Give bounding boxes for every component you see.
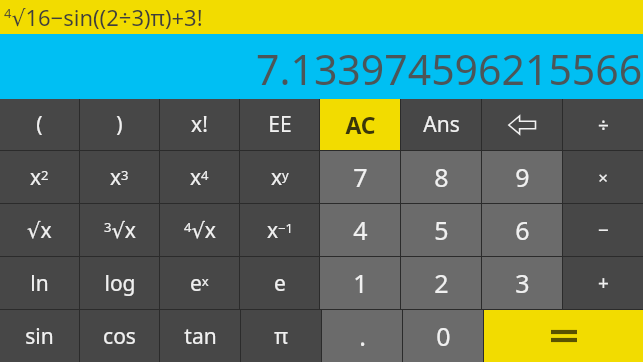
staticText: ex: [190, 269, 209, 298]
staticText: x2: [30, 163, 49, 192]
button[interactable]: divide: [563, 99, 643, 150]
button[interactable]: decimal point: [322, 310, 402, 362]
button[interactable]: 3: [482, 257, 562, 309]
staticText: 4√16−sin((2÷3)π)+3!: [4, 2, 203, 32]
button[interactable]: cube root: [80, 204, 159, 256]
staticText: x4: [190, 163, 209, 192]
staticText: √x: [27, 216, 52, 245]
staticText: 3: [515, 266, 530, 300]
staticText: EE: [268, 110, 292, 139]
button[interactable]: e constant: [240, 257, 319, 309]
staticText: ×: [598, 166, 608, 189]
staticText: 6: [515, 213, 530, 247]
button[interactable]: plus: [563, 257, 643, 309]
staticText: tan: [184, 322, 217, 351]
button[interactable]: logarithm: [80, 257, 159, 309]
button[interactable]: x to the fourth: [160, 151, 239, 203]
button[interactable]: exponent EE: [240, 99, 319, 150]
button[interactable]: x squared: [0, 151, 79, 203]
button[interactable]: tangent: [160, 310, 240, 362]
staticText: sin: [25, 322, 54, 351]
staticText: x!: [191, 110, 208, 139]
staticText: 7: [353, 160, 368, 194]
button[interactable]: reciprocal: [240, 204, 319, 256]
button[interactable]: AC clear: [320, 99, 400, 150]
staticText: 1: [353, 266, 368, 300]
staticText: ÷: [598, 112, 609, 138]
button[interactable]: 7: [320, 151, 400, 203]
other: Backspace: [507, 116, 537, 134]
staticText: xy: [271, 163, 289, 192]
button[interactable]: 0: [403, 310, 483, 362]
button[interactable]: Answer: [401, 99, 481, 150]
staticText: log: [104, 269, 136, 298]
staticText: x3: [110, 163, 129, 192]
button[interactable]: natural logarithm: [0, 257, 79, 309]
staticText: π: [274, 322, 288, 351]
staticText: 5: [434, 213, 449, 247]
button[interactable]: 9: [482, 151, 562, 203]
button[interactable]: x to the y: [240, 151, 319, 203]
button[interactable]: 4: [320, 204, 400, 256]
staticText: (: [36, 110, 43, 139]
staticText: 8: [434, 160, 449, 194]
button[interactable]: Backspace: [482, 99, 562, 150]
staticText: cos: [103, 322, 136, 351]
button[interactable]: cosine: [80, 310, 159, 362]
staticText: x−1: [267, 216, 293, 245]
staticText: +: [598, 270, 609, 296]
staticText: AC: [345, 109, 376, 140]
button[interactable]: 8: [401, 151, 481, 203]
staticText: 9: [515, 160, 530, 194]
button[interactable]: close parenthesis: [80, 99, 159, 150]
button[interactable]: pi: [241, 310, 321, 362]
button[interactable]: equals: [484, 310, 643, 362]
button[interactable]: 2: [401, 257, 481, 309]
staticText: 0: [436, 319, 451, 353]
staticText: ): [116, 110, 123, 139]
button[interactable]: x cubed: [80, 151, 159, 203]
staticText: 7.133974596215566: [256, 41, 643, 97]
button[interactable]: 6: [482, 204, 562, 256]
button[interactable]: sine: [0, 310, 79, 362]
button[interactable]: 5: [401, 204, 481, 256]
staticText: e: [274, 269, 286, 298]
button[interactable]: fourth root: [160, 204, 239, 256]
staticText: ln: [30, 269, 49, 298]
staticText: Ans: [423, 110, 460, 139]
button[interactable]: square root: [0, 204, 79, 256]
button[interactable]: open parenthesis: [0, 99, 79, 150]
staticText: 4√x: [184, 216, 216, 245]
button[interactable]: multiply: [563, 151, 643, 203]
button[interactable]: minus: [563, 204, 643, 256]
staticText: 2: [434, 266, 449, 300]
staticText: −: [598, 217, 609, 243]
staticText: 4: [353, 213, 368, 247]
button[interactable]: factorial: [160, 99, 239, 150]
staticText: 3√x: [104, 216, 136, 245]
button[interactable]: 1: [320, 257, 400, 309]
button[interactable]: e to the x: [160, 257, 239, 309]
staticText: .: [359, 319, 366, 353]
